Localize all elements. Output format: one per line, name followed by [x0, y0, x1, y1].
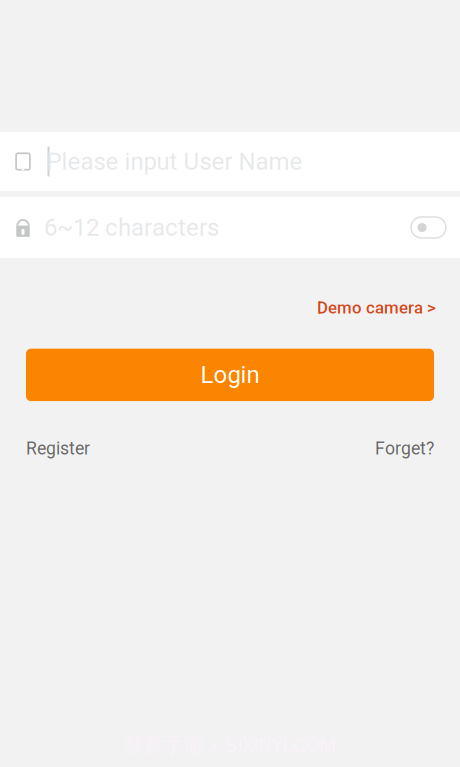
button[interactable]: 6~12 characters	[0, 197, 460, 258]
button[interactable]: Register	[26, 438, 90, 459]
staticText: Register	[26, 438, 90, 459]
staticText: Forget?	[375, 438, 434, 459]
staticText: Demo camera >	[317, 298, 436, 318]
button[interactable]: Forget?	[375, 438, 434, 459]
button[interactable]: Please input User Name	[0, 132, 460, 191]
button[interactable]: Login	[26, 349, 434, 401]
button[interactable]: Demo camera >	[317, 298, 436, 318]
staticText: 6~12 characters	[44, 213, 219, 241]
button[interactable]: Show password	[411, 217, 446, 238]
staticText: Login	[200, 361, 259, 389]
staticText: Please input User Name	[46, 147, 302, 175]
